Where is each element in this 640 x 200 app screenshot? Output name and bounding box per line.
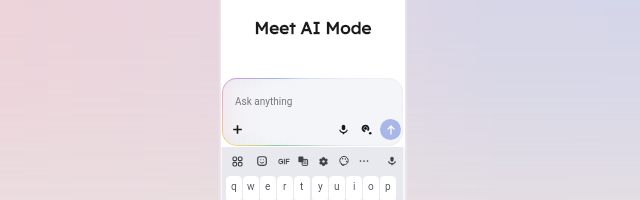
button[interactable]: w <box>243 176 259 200</box>
staticText: e <box>265 181 271 193</box>
staticText: t <box>300 181 304 193</box>
button[interactable]: Google Lens <box>357 120 375 138</box>
staticText: w <box>247 181 255 193</box>
button[interactable]: Stickers <box>254 153 270 169</box>
button[interactable]: p <box>380 176 396 200</box>
button[interactable]: Voice search <box>334 120 352 138</box>
button[interactable]: t <box>294 176 310 200</box>
button[interactable]: o <box>363 176 379 200</box>
button[interactable]: Ask anything <box>223 79 402 145</box>
button[interactable]: r <box>277 176 293 200</box>
button[interactable]: e <box>260 176 276 200</box>
button[interactable]: Send <box>380 119 401 140</box>
button[interactable]: Voice input <box>384 153 400 169</box>
staticText: q <box>231 181 237 193</box>
staticText: p <box>385 181 391 193</box>
staticText: y <box>318 181 323 193</box>
button[interactable]: Translate <box>295 153 311 169</box>
button[interactable]: Add attachment <box>228 120 246 138</box>
staticText: r <box>283 181 287 193</box>
staticText: Meet AI Mode <box>221 17 405 38</box>
button[interactable]: q <box>226 176 242 200</box>
button[interactable]: Apps <box>229 153 245 169</box>
button[interactable]: Settings <box>315 153 331 169</box>
button[interactable]: y <box>312 176 328 200</box>
button[interactable]: GIF <box>276 153 292 169</box>
staticText: Ask anything <box>235 96 293 108</box>
staticText: u <box>334 181 340 193</box>
button[interactable]: i <box>346 176 362 200</box>
staticText: GIF <box>278 157 290 166</box>
button[interactable]: More options <box>356 153 372 169</box>
button[interactable]: u <box>329 176 345 200</box>
staticText: i <box>353 181 356 193</box>
button[interactable]: Themes <box>336 153 352 169</box>
staticText: o <box>368 181 374 193</box>
